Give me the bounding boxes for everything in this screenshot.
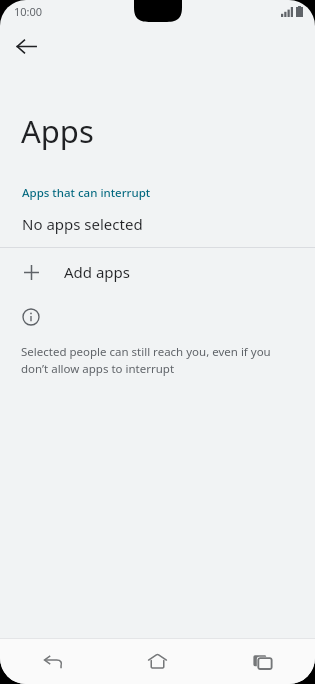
staticText: No apps selected [22,214,143,234]
staticText: Add apps [64,262,130,282]
button[interactable]: No apps selected [0,201,315,247]
button[interactable]: Back [0,639,105,684]
button[interactable]: Add apps [0,248,315,296]
button[interactable]: Back [6,26,46,66]
staticText: 10:00 [14,4,43,19]
other: Information [21,307,40,326]
staticText: Apps that can interrupt [22,185,151,201]
button[interactable]: Recent apps [210,639,315,684]
staticText: Selected people can still reach you, eve… [21,344,293,376]
button[interactable]: Home [105,639,210,684]
staticText: Apps [21,110,94,152]
